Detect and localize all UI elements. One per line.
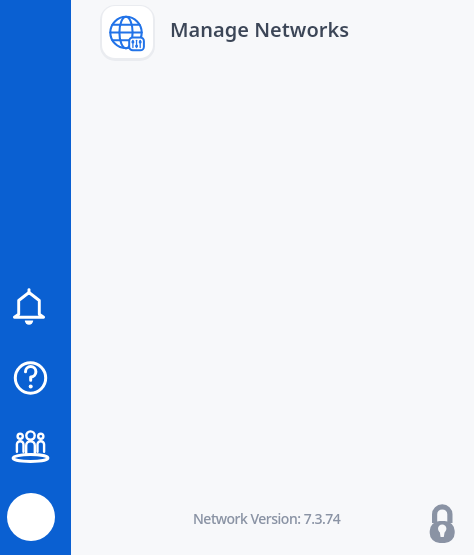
staticText: Manage Networks: [170, 16, 350, 43]
button[interactable]: [10, 286, 52, 328]
button[interactable]: [102, 6, 153, 58]
button[interactable]: [7, 493, 55, 541]
button[interactable]: [10, 358, 52, 400]
button[interactable]: [8, 418, 54, 464]
button[interactable]: [424, 500, 460, 546]
staticText: Network Version: 7.3.74: [193, 509, 341, 528]
